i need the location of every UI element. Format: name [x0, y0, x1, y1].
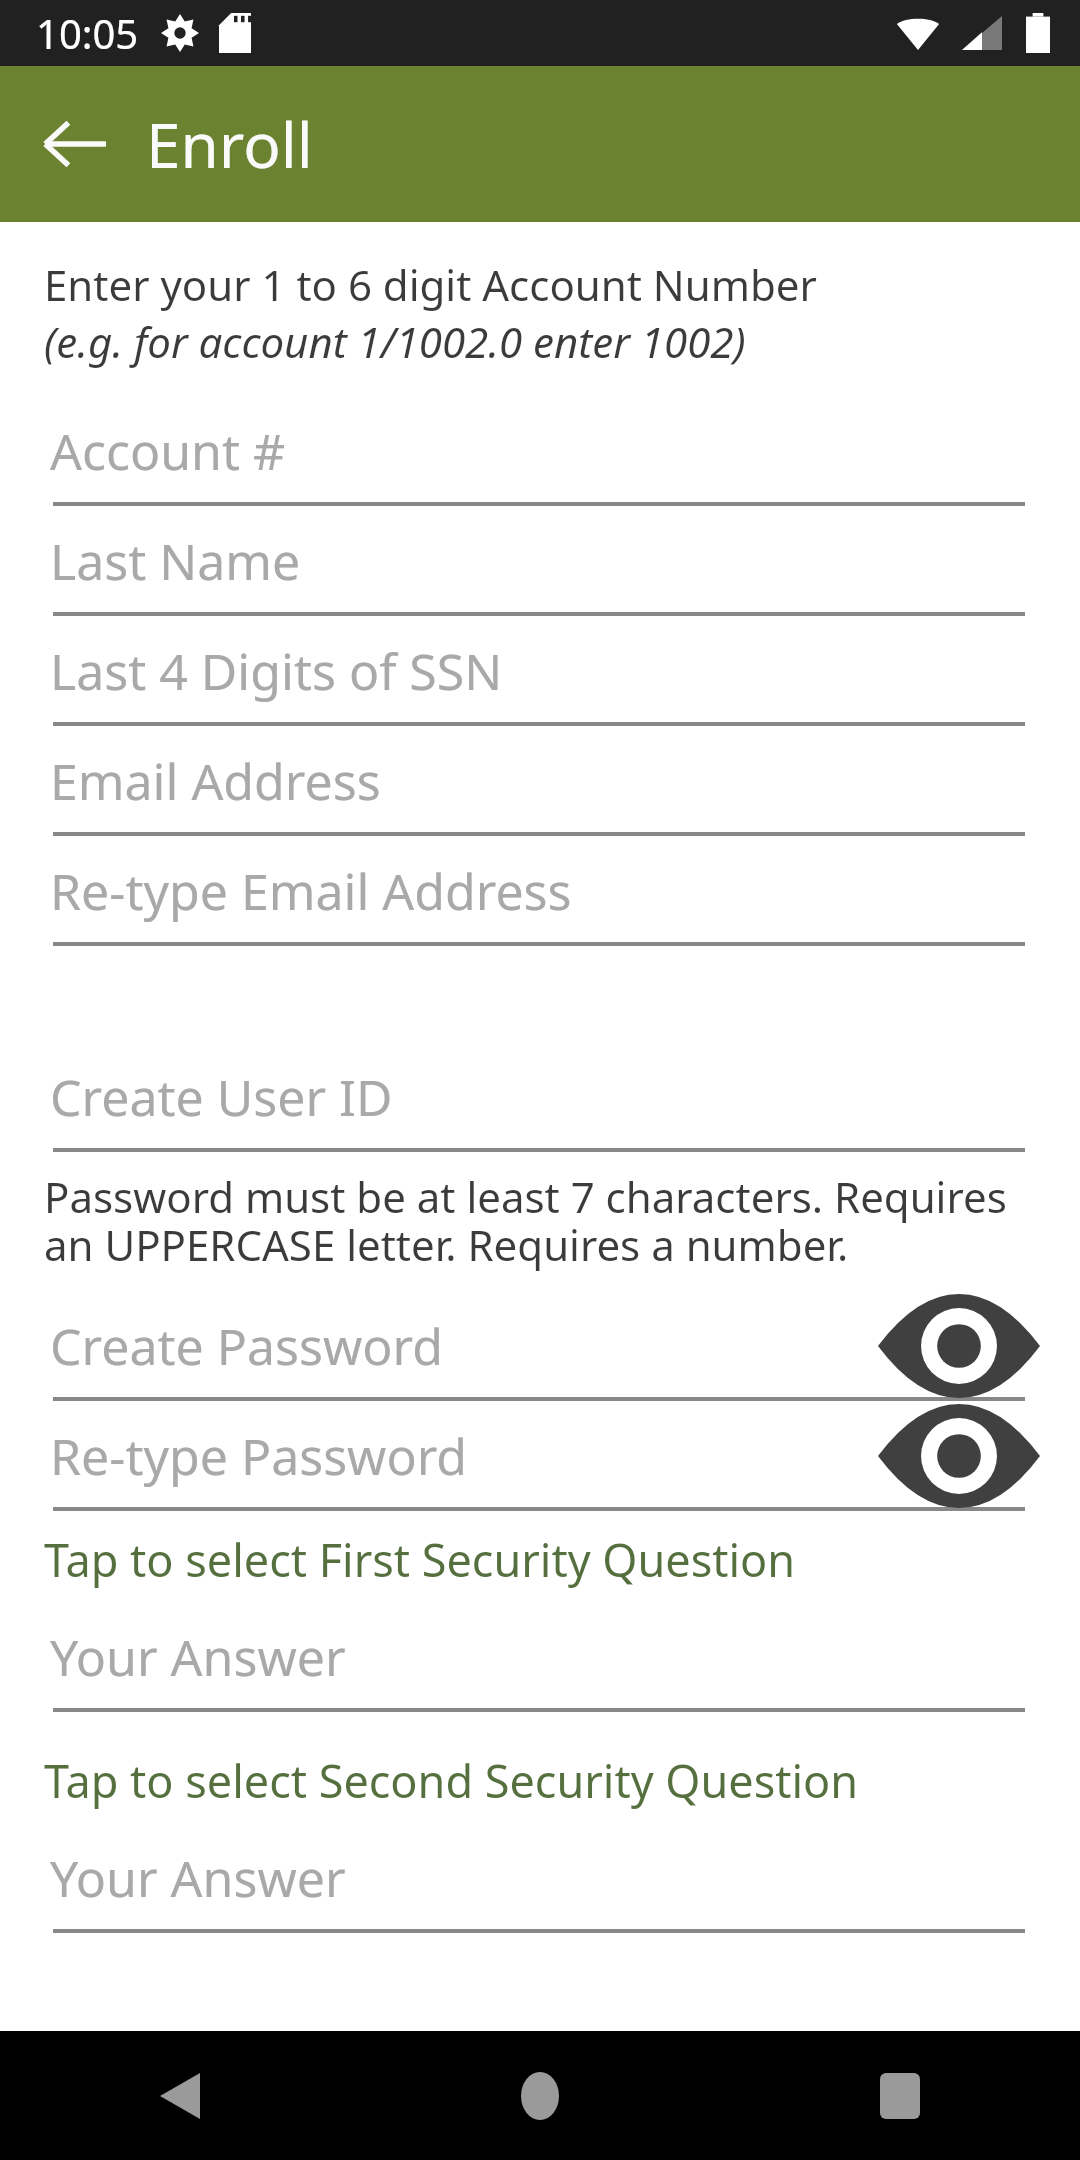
button[interactable]: Show password	[874, 1291, 1044, 1401]
button[interactable]: Create User ID	[0, 1042, 1080, 1152]
staticText: Enter your 1 to 6 digit Account Number	[44, 256, 817, 313]
button[interactable]: Your Answer	[0, 1602, 1080, 1712]
button[interactable]: Last 4 Digits of SSN	[0, 616, 1080, 726]
button[interactable]: Back	[18, 87, 132, 201]
staticText: Tap to select Second Security Question	[44, 1750, 859, 1811]
button[interactable]: Re-type Email Address	[0, 836, 1080, 946]
button[interactable]: Home	[360, 2031, 720, 2160]
button[interactable]: Last Name	[0, 506, 1080, 616]
staticText: (e.g. for account 1/1002.0 enter 1002)	[44, 313, 746, 370]
staticText: Enroll	[146, 102, 313, 186]
button[interactable]: Back	[0, 2031, 360, 2160]
staticText: Your Answer	[50, 1623, 346, 1691]
button[interactable]: Recents	[720, 2031, 1080, 2160]
button[interactable]: Tap to select First Security Question	[0, 1517, 1080, 1602]
staticText: Your Answer	[50, 1844, 346, 1912]
staticText: Account #	[50, 417, 286, 485]
staticText: 10:05	[36, 6, 139, 60]
staticText: Re-type Email Address	[50, 857, 572, 925]
staticText: Create Password	[50, 1312, 443, 1380]
button[interactable]: Your Answer	[0, 1823, 1080, 1933]
staticText: Email Address	[50, 747, 381, 815]
staticText: Create User ID	[50, 1063, 393, 1131]
button[interactable]: Account #	[0, 396, 1080, 506]
button[interactable]: Re-type Password	[0, 1401, 1080, 1511]
staticText: Last 4 Digits of SSN	[50, 637, 503, 705]
button[interactable]: Tap to select Second Security Question	[0, 1738, 1080, 1823]
staticText: Tap to select First Security Question	[44, 1529, 796, 1590]
staticText: Last Name	[50, 527, 301, 595]
button[interactable]: Show password	[874, 1401, 1044, 1511]
staticText: Password must be at least 7 characters. …	[44, 1168, 1054, 1273]
button[interactable]: Email Address	[0, 726, 1080, 836]
button[interactable]: Create Password	[0, 1291, 1080, 1401]
staticText: Re-type Password	[50, 1422, 468, 1490]
